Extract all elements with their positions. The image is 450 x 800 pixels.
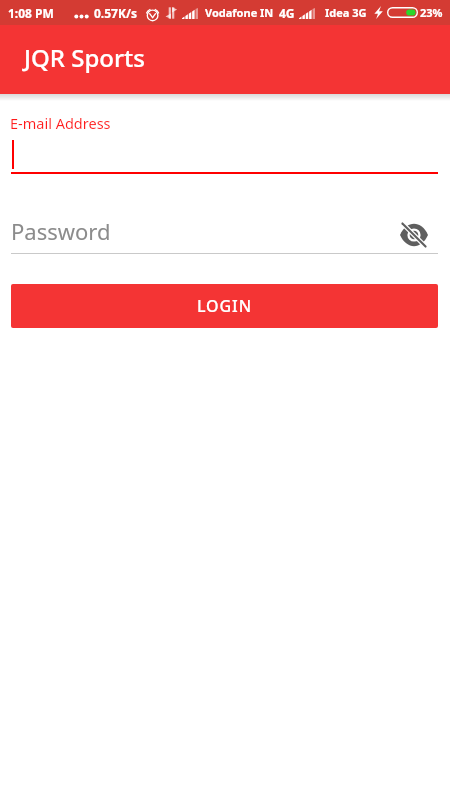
staticText: 0.57K/s — [94, 5, 137, 21]
staticText: JQR Sports — [24, 41, 145, 74]
staticText: Idea 3G — [325, 5, 367, 20]
staticText: Vodafone IN — [205, 5, 274, 20]
staticText: Password — [11, 216, 111, 246]
staticText: 23% — [420, 5, 443, 20]
button[interactable]: Show password — [395, 216, 433, 254]
button[interactable]: Password — [0, 215, 450, 255]
button[interactable]: E-mail Address — [0, 111, 450, 177]
button[interactable]: LOGIN — [11, 284, 438, 328]
staticText: 4G — [279, 5, 295, 21]
staticText: 1:08 PM — [8, 5, 54, 21]
staticText: E-mail Address — [10, 113, 111, 133]
staticText: LOGIN — [197, 295, 252, 317]
